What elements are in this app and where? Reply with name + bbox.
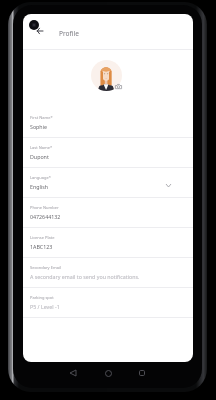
staticText: 1ABC123 xyxy=(30,243,53,250)
button[interactable]: Language* xyxy=(23,168,193,198)
button[interactable]: Change photo xyxy=(114,82,122,90)
button[interactable]: Secondary Email xyxy=(23,258,193,288)
staticText: Last Name* xyxy=(30,145,53,150)
staticText: Parking spot xyxy=(30,295,54,300)
staticText: Sophie xyxy=(30,123,47,130)
button[interactable]: Back xyxy=(33,24,46,37)
staticText: 0472644132 xyxy=(30,213,61,220)
button[interactable]: Home xyxy=(102,367,114,379)
button[interactable]: Phone Number xyxy=(23,198,193,228)
button[interactable]: First Name* xyxy=(23,108,193,138)
staticText: P5 / Level -1 xyxy=(30,303,60,310)
staticText: Dupont xyxy=(30,153,49,160)
button[interactable]: Parking spot xyxy=(23,288,193,318)
button[interactable]: License Plate xyxy=(23,228,193,258)
button[interactable]: Recent apps xyxy=(136,367,148,379)
staticText: A secondary email to send you notificati… xyxy=(30,273,140,280)
staticText: Language* xyxy=(30,175,51,180)
button[interactable]: Back xyxy=(67,367,79,379)
staticText: License Plate xyxy=(30,235,55,240)
staticText: Secondary Email xyxy=(30,265,61,270)
staticText: Profile xyxy=(59,29,79,38)
staticText: Phone Number xyxy=(30,205,59,210)
staticText: English xyxy=(30,183,49,190)
staticText: First Name* xyxy=(30,115,53,120)
button[interactable]: Last Name* xyxy=(23,138,193,168)
